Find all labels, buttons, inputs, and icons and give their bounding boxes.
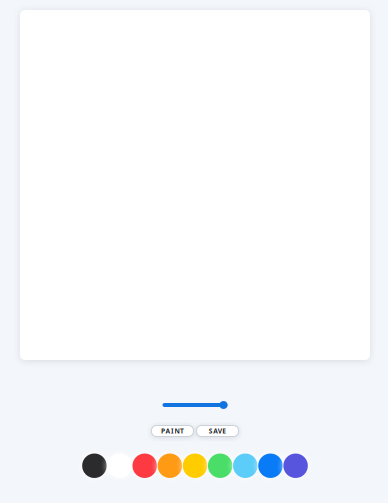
button[interactable]: Colour swatch [107,453,132,478]
button[interactable]: Colour swatch [208,453,232,478]
button[interactable]: Colour swatch [158,453,182,478]
button[interactable]: Colour swatch [233,453,258,478]
button[interactable]: Colour swatch [82,453,107,478]
button[interactable]: Colour swatch [132,453,157,478]
staticText: PAINT [161,427,184,435]
button[interactable]: SAVE [196,425,238,436]
button[interactable]: Colour swatch [283,453,308,478]
button[interactable]: Brush size [161,400,227,409]
staticText: SAVE [209,427,226,435]
button[interactable]: Colour swatch [258,453,283,478]
button[interactable]: PAINT [151,425,193,436]
button[interactable]: Colour swatch [183,453,207,478]
